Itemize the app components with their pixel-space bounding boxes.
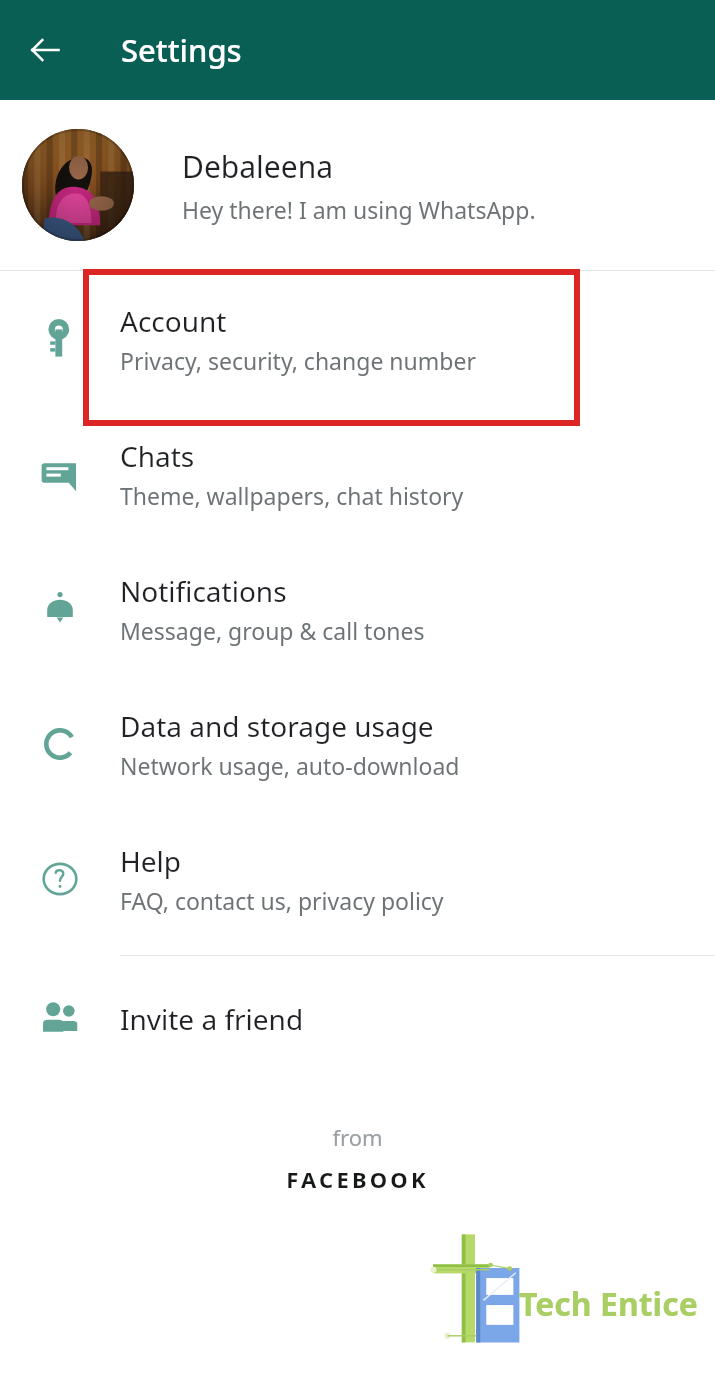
- staticText: Notifications: [120, 572, 287, 610]
- staticText: Hey there! I am using WhatsApp.: [182, 194, 536, 225]
- staticText: FACEBOOK: [286, 1164, 429, 1194]
- staticText: Settings: [121, 29, 242, 71]
- staticText: FAQ, contact us, privacy policy: [120, 885, 444, 916]
- staticText: Help: [120, 842, 181, 880]
- button[interactable]: Debaleena: [0, 100, 715, 270]
- button[interactable]: Back: [18, 23, 72, 77]
- staticText: Theme, wallpapers, chat history: [120, 480, 464, 511]
- button[interactable]: Account: [0, 271, 715, 406]
- staticText: Tech Entice: [519, 1282, 698, 1326]
- staticText: Privacy, security, change number: [120, 345, 476, 376]
- button[interactable]: Data and storage usage: [0, 676, 715, 811]
- staticText: Invite a friend: [120, 1000, 304, 1038]
- staticText: Data and storage usage: [120, 707, 434, 745]
- staticText: Message, group & call tones: [120, 615, 425, 646]
- button[interactable]: Chats: [0, 406, 715, 541]
- staticText: Network usage, auto-download: [120, 750, 460, 781]
- staticText: Debaleena: [182, 146, 334, 187]
- button[interactable]: Help: [0, 811, 715, 946]
- button[interactable]: Invite a friend: [0, 956, 715, 1082]
- staticText: Account: [120, 302, 227, 340]
- staticText: Chats: [120, 437, 195, 475]
- button[interactable]: Notifications: [0, 541, 715, 676]
- staticText: from: [332, 1122, 383, 1152]
